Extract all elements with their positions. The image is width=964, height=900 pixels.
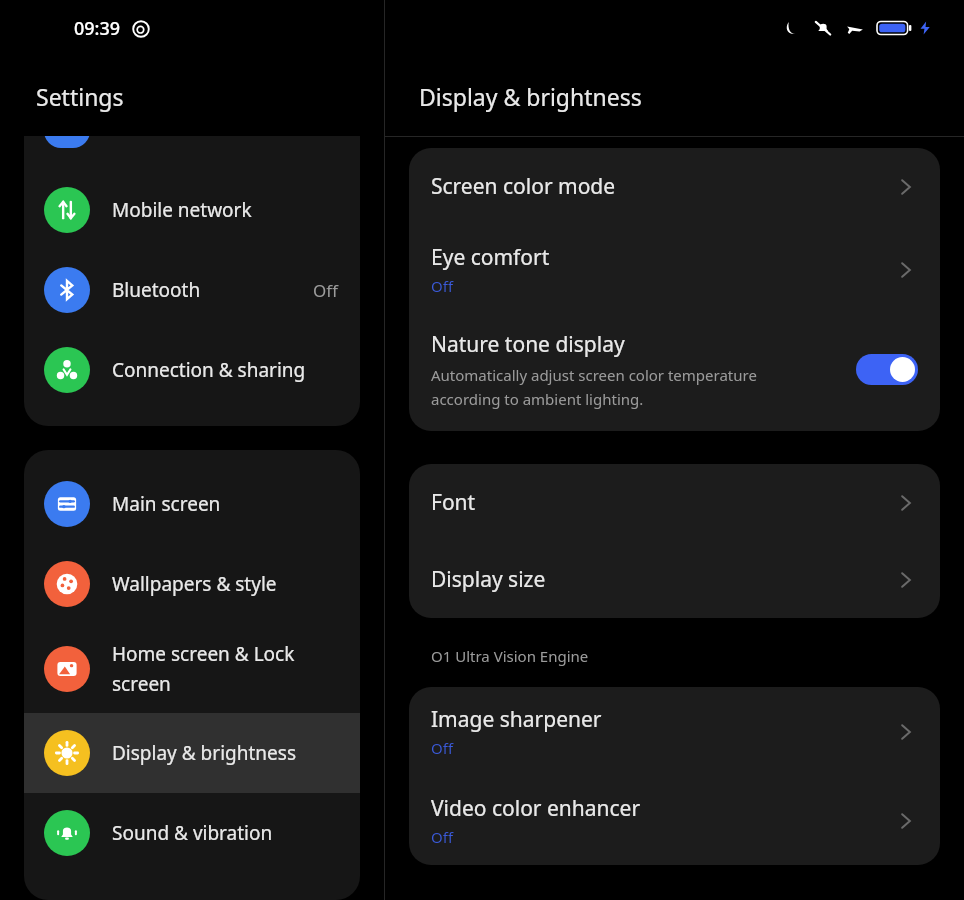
button[interactable]: Nature tone display [431, 314, 918, 431]
staticText: Automatically adjust screen color temper… [431, 365, 757, 409]
staticText: Wallpapers & style [112, 571, 338, 597]
staticText: Off [313, 279, 338, 302]
staticText: Off [431, 276, 454, 296]
staticText: Nature tone display [431, 330, 625, 359]
button[interactable]: Video color enhancer [431, 776, 918, 865]
button[interactable]: Display & brightness [24, 713, 360, 793]
button[interactable]: Screen color mode [431, 148, 918, 225]
staticText: Connection & sharing [112, 357, 338, 383]
staticText: Display & brightness [112, 740, 338, 766]
staticText: Sound & vibration [112, 820, 338, 846]
button[interactable]: Display size [431, 541, 918, 618]
staticText: Video color enhancer [431, 794, 641, 823]
button[interactable]: Sound & vibration [24, 793, 360, 873]
staticText: Display & brightness [419, 81, 642, 112]
button[interactable]: Main screen [24, 464, 360, 544]
staticText: Font [431, 488, 476, 517]
button[interactable]: Wallpapers & style [24, 544, 360, 624]
button[interactable]: Connection & sharing [24, 330, 360, 410]
staticText: Bluetooth [112, 277, 313, 303]
button[interactable]: Eye comfort [431, 225, 918, 314]
button[interactable]: Notifications & status [24, 873, 360, 900]
staticText: Mobile network [112, 197, 338, 223]
staticText: Home screen & Lock screen [112, 641, 338, 696]
button[interactable]: Nature tone display toggle [856, 354, 918, 385]
staticText: Settings [36, 81, 124, 112]
staticText: O1 Ultra Vision Engine [431, 646, 589, 666]
staticText: Eye comfort [431, 243, 550, 272]
staticText: Display size [431, 565, 546, 594]
button[interactable]: Bluetooth [24, 250, 360, 330]
staticText: Off [431, 738, 454, 758]
staticText: Off [431, 827, 454, 847]
button[interactable]: Mobile network [24, 170, 360, 250]
staticText: Image sharpener [431, 705, 602, 734]
button[interactable]: Font [431, 464, 918, 541]
button[interactable]: Home screen & Lock screen [24, 624, 360, 713]
staticText: Main screen [112, 491, 338, 517]
staticText: Screen color mode [431, 172, 616, 201]
button[interactable]: Image sharpener [431, 687, 918, 776]
staticText: 09:39 [74, 16, 121, 41]
